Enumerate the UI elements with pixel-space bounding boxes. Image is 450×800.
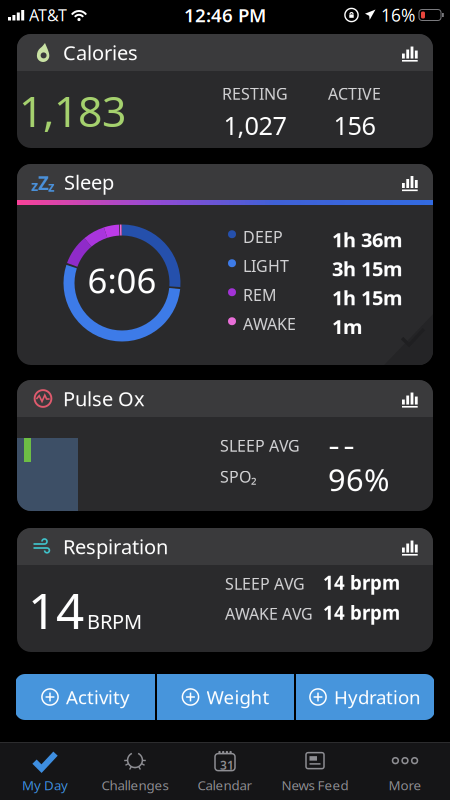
staticText: AWAKE: [243, 313, 296, 334]
button[interactable]: Challenges: [90, 745, 180, 797]
staticText: 3h 15m: [332, 255, 403, 282]
button[interactable]: My Day: [0, 745, 90, 797]
button[interactable]: Show Respiration details: [402, 536, 433, 556]
staticText: LIGHT: [243, 255, 289, 276]
staticText: 1,027: [223, 108, 286, 142]
staticText: Calories: [63, 39, 138, 66]
staticText: News Feed: [281, 776, 348, 794]
staticText: Weight: [206, 685, 269, 709]
staticText: 156: [333, 108, 375, 142]
staticText: 31: [220, 757, 234, 773]
staticText: BRPM: [87, 608, 142, 635]
staticText: 96%: [328, 459, 389, 500]
button[interactable]: Show Calories details: [402, 42, 433, 62]
staticText: RESTING: [222, 83, 288, 104]
button[interactable]: Calories: [17, 34, 433, 148]
staticText: 1,183: [19, 82, 126, 139]
button[interactable]: Show Pulse Ox details: [402, 388, 433, 408]
button[interactable]: Weight: [157, 674, 294, 720]
staticText: z: [48, 178, 55, 195]
staticText: Respiration: [63, 533, 168, 560]
staticText: 16%: [381, 3, 415, 26]
staticText: AWAKE AVG: [225, 603, 313, 624]
staticText: My Day: [22, 776, 68, 794]
staticText: Challenges: [101, 776, 168, 794]
staticText: ACTIVE: [328, 83, 381, 104]
button[interactable]: Pulse Ox: [17, 380, 433, 511]
staticText: SLEEP AVG: [225, 573, 305, 594]
staticText: 1h 36m: [332, 226, 403, 253]
staticText: REM: [243, 284, 277, 305]
staticText: Hydration: [334, 685, 421, 709]
button[interactable]: News Feed: [270, 745, 360, 797]
staticText: 1m: [332, 313, 363, 340]
staticText: Activity: [66, 685, 130, 709]
staticText: Pulse Ox: [63, 385, 145, 412]
staticText: 14 brpm: [323, 570, 400, 595]
staticText: SPO₂: [220, 466, 257, 487]
button[interactable]: More: [360, 745, 450, 797]
staticText: Z: [38, 171, 49, 195]
button[interactable]: 31: [180, 745, 270, 797]
button[interactable]: Respiration: [17, 528, 433, 652]
staticText: Sleep: [64, 169, 114, 195]
staticText: DEEP: [243, 226, 283, 247]
staticText: 14: [28, 577, 84, 642]
staticText: 1h 15m: [332, 284, 403, 311]
button[interactable]: Show Sleep details: [402, 172, 433, 192]
button[interactable]: Activity: [16, 674, 155, 720]
staticText: z: [31, 176, 38, 195]
staticText: 6:06: [87, 257, 156, 303]
staticText: 12:46 PM: [184, 3, 266, 27]
staticText: Calendar: [197, 776, 252, 794]
staticText: More: [388, 776, 421, 794]
staticText: SLEEP AVG: [220, 435, 300, 456]
staticText: 14 brpm: [323, 600, 400, 625]
staticText: – –: [329, 432, 354, 459]
button[interactable]: z: [17, 164, 433, 365]
staticText: AT&T: [29, 4, 67, 26]
button[interactable]: Hydration: [296, 674, 434, 720]
